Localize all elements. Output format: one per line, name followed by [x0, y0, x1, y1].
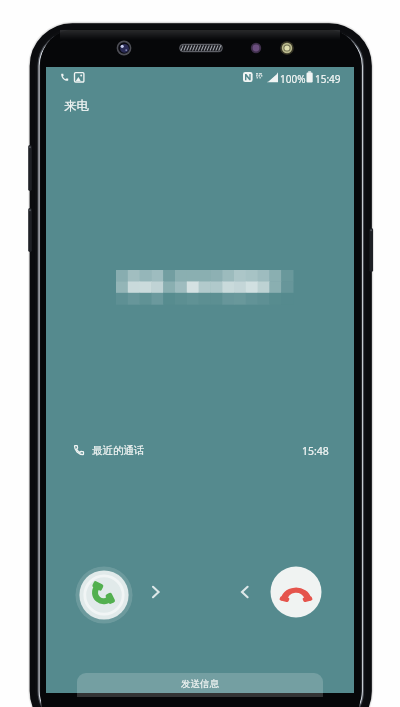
staticText: 15:49	[315, 72, 341, 86]
staticText: 最近的通话	[92, 444, 145, 457]
button[interactable]: 最近的通话	[56, 438, 344, 464]
button[interactable]: Decline call	[269, 565, 323, 619]
button[interactable]: Answer call	[75, 566, 133, 624]
staticText: 15:48	[302, 444, 329, 458]
staticText: 来电	[64, 98, 89, 114]
staticText: 发送信息	[181, 678, 219, 690]
button[interactable]: 发送信息	[77, 673, 323, 697]
staticText: 100%	[280, 72, 306, 86]
